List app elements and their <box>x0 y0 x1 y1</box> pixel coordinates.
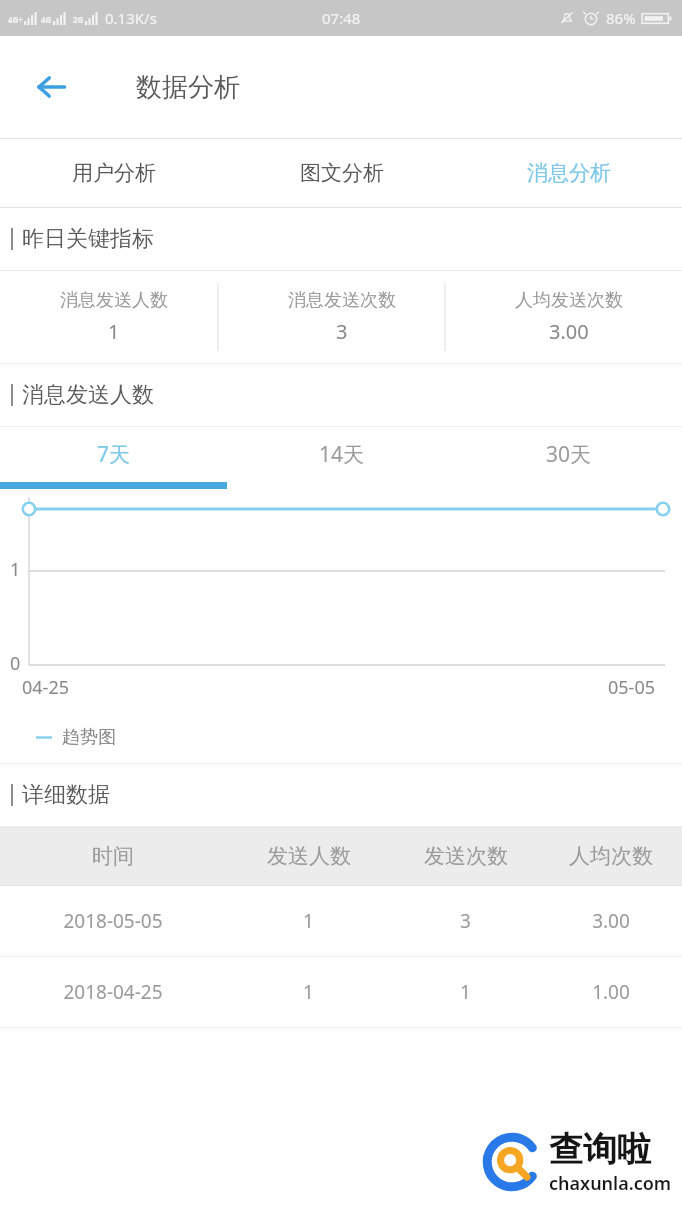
button[interactable]: 2018-04-25 <box>0 957 682 1027</box>
staticText: 14天 <box>319 440 365 469</box>
staticText: 趋势图 <box>62 726 116 749</box>
button[interactable]: 用户分析 <box>0 139 228 207</box>
staticText: 2018-04-25 <box>63 979 163 1005</box>
staticText: chaxunla.com <box>549 1171 672 1196</box>
button[interactable]: 2018-05-05 <box>0 886 682 956</box>
staticText: 1 <box>303 908 314 934</box>
staticText: 05-05 <box>608 675 655 700</box>
button[interactable]: 图文分析 <box>228 139 455 207</box>
button[interactable]: 消息发送人数 <box>0 271 228 363</box>
staticText: 86% <box>606 8 636 28</box>
staticText: 1 <box>460 979 471 1005</box>
staticText: 图文分析 <box>300 160 384 186</box>
staticText: 04-25 <box>22 675 69 700</box>
staticText: 4G <box>41 14 52 25</box>
staticText: 发送次数 <box>424 843 508 869</box>
staticText: 消息分析 <box>527 160 611 186</box>
staticText: 查询啦 <box>549 1128 651 1171</box>
staticText: 7天 <box>97 440 131 469</box>
staticText: 详细数据 <box>22 781 110 809</box>
button[interactable]: 消息发送次数 <box>228 271 455 363</box>
staticText: 2018-05-05 <box>63 908 163 934</box>
staticText: 人均发送次数 <box>515 289 623 312</box>
staticText: 消息发送人数 <box>60 289 168 312</box>
staticText: 0.13K/s <box>105 8 157 28</box>
staticText: 3 <box>460 908 471 934</box>
staticText: 发送人数 <box>267 843 351 869</box>
button[interactable]: 14天 <box>228 427 455 489</box>
staticText: 4G+ <box>8 14 23 25</box>
staticText: 1 <box>108 318 120 345</box>
button[interactable]: 人均发送次数 <box>455 271 682 363</box>
staticText: 人均次数 <box>569 843 653 869</box>
staticText: 3.00 <box>592 908 630 934</box>
staticText: 消息发送人数 <box>22 381 154 409</box>
staticText: 07:48 <box>322 8 361 28</box>
staticText: 30天 <box>546 440 592 469</box>
button[interactable]: 30天 <box>455 427 682 489</box>
button[interactable]: 7天 <box>0 427 228 489</box>
staticText: 数据分析 <box>136 71 240 104</box>
staticText: 用户分析 <box>72 160 156 186</box>
staticText: 昨日关键指标 <box>22 225 154 253</box>
staticText: 2G <box>73 14 84 25</box>
staticText: 1.00 <box>592 979 630 1005</box>
button[interactable]: 消息分析 <box>455 139 682 207</box>
staticText: 消息发送次数 <box>288 289 396 312</box>
staticText: 1 <box>10 557 21 582</box>
staticText: 3.00 <box>549 318 589 345</box>
staticText: 3 <box>336 318 348 345</box>
button[interactable]: Back <box>20 56 82 118</box>
staticText: 0 <box>10 651 21 676</box>
staticText: 时间 <box>92 843 134 869</box>
staticText: 1 <box>303 979 314 1005</box>
